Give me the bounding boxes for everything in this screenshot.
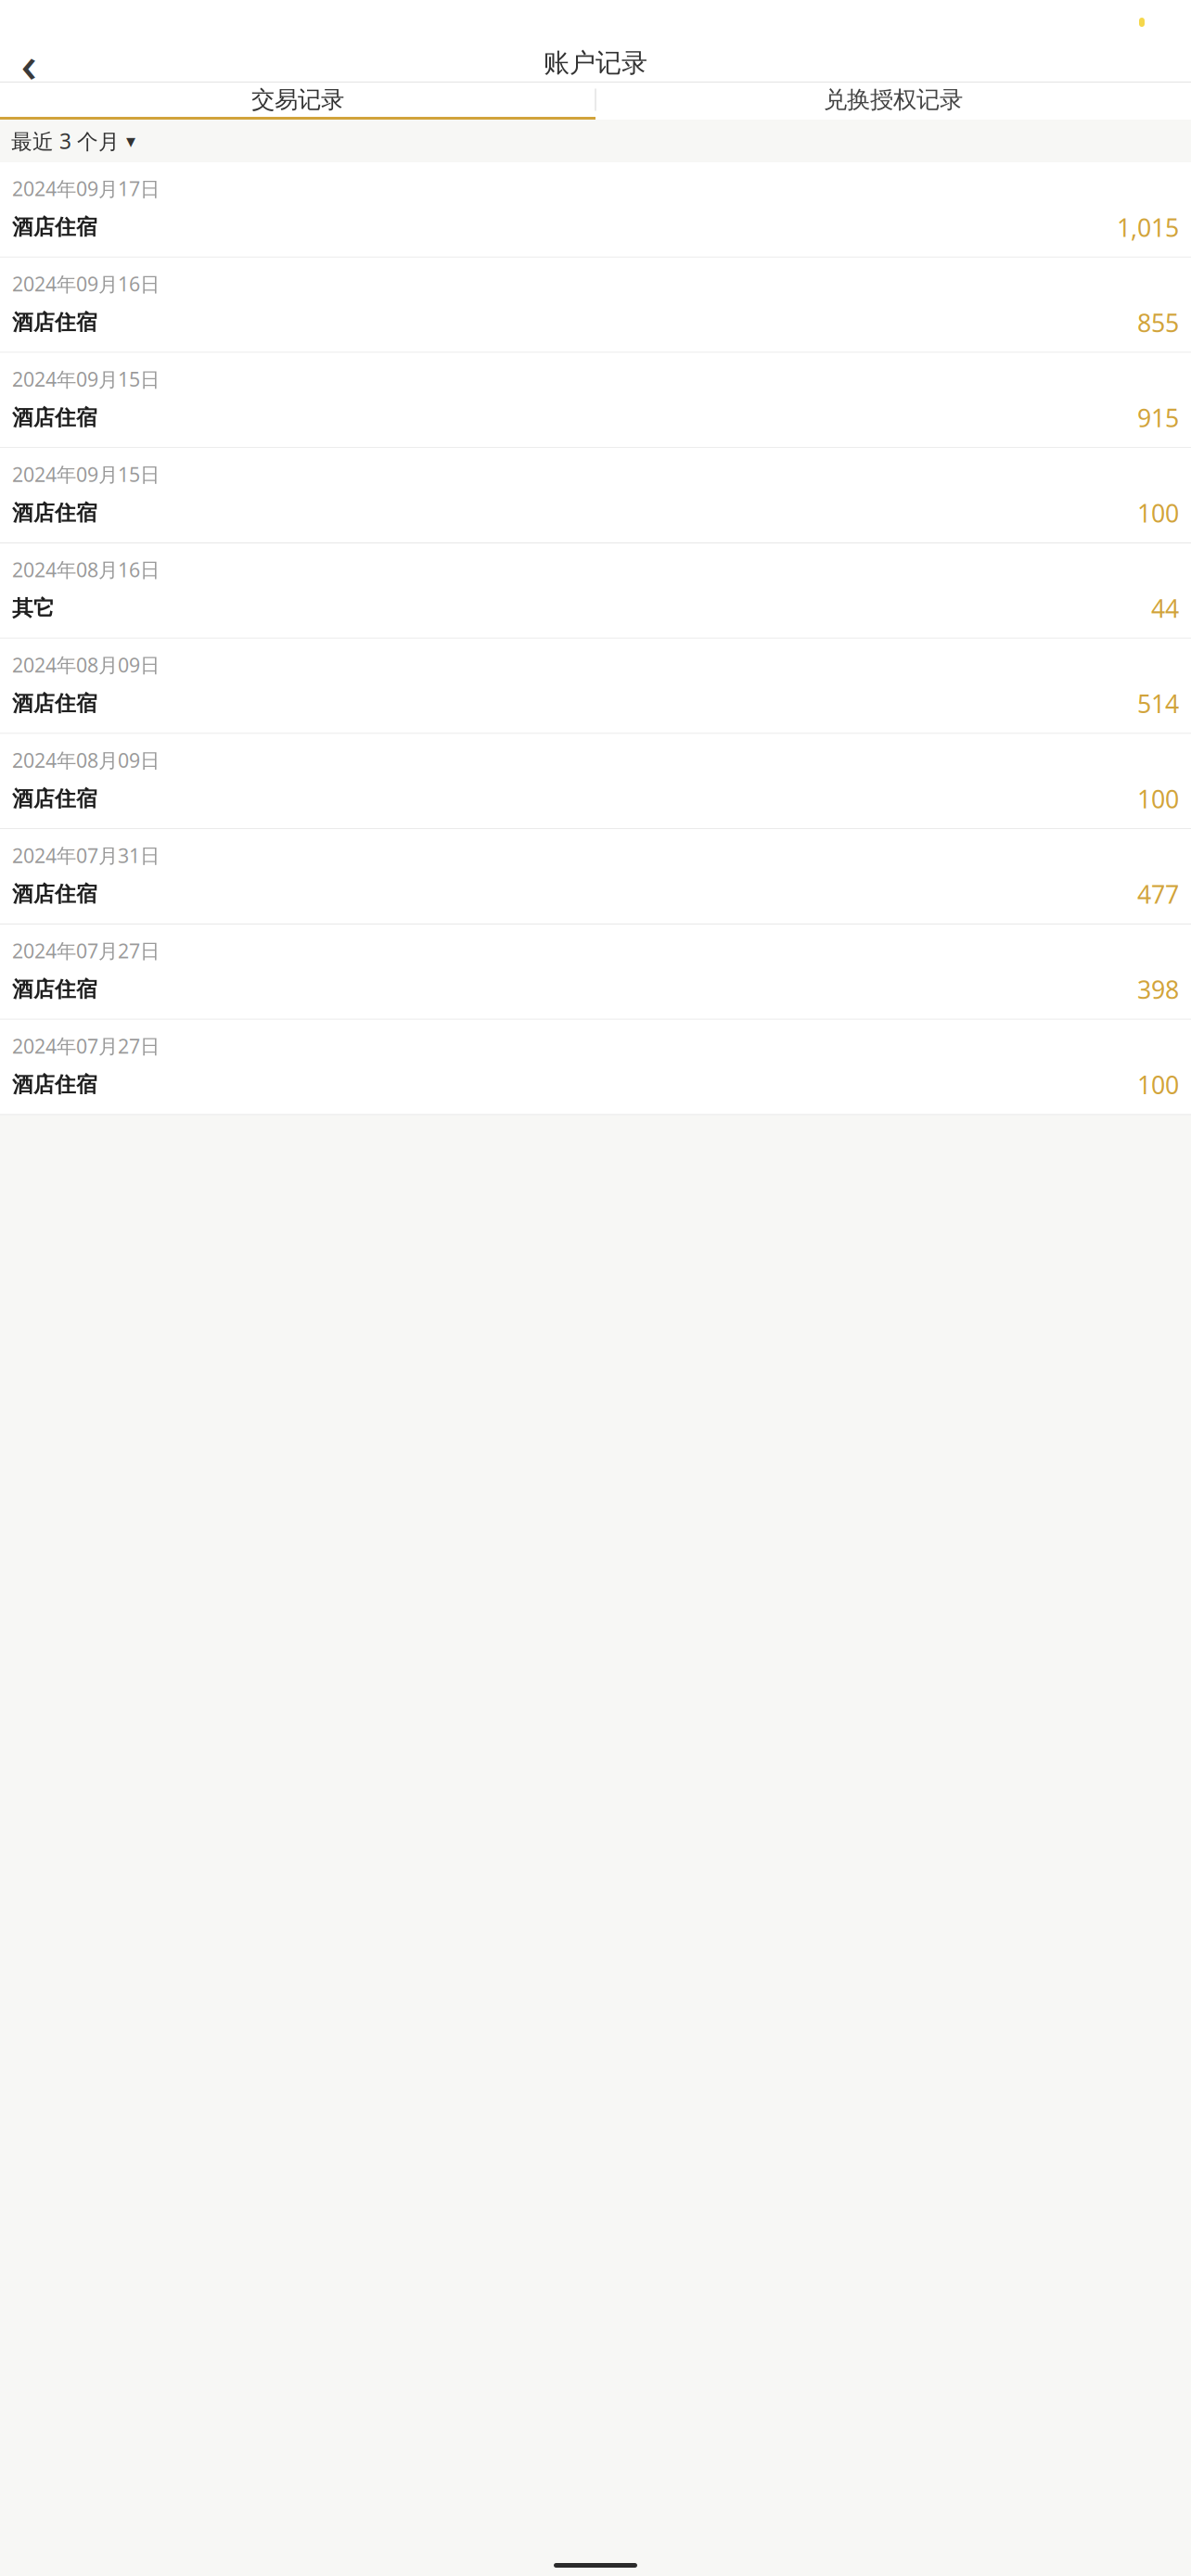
staticText: 2024年08月09日: [12, 652, 160, 678]
staticText: 酒店住宿: [12, 405, 97, 431]
staticText: ‹: [21, 30, 37, 96]
staticText: 交易记录: [251, 85, 344, 114]
staticText: 其它: [12, 595, 55, 621]
staticText: 100: [1137, 1068, 1179, 1101]
button[interactable]: 2024年07月31日: [0, 829, 1191, 924]
staticText: 酒店住宿: [12, 1072, 97, 1098]
staticText: 2024年07月27日: [12, 1033, 160, 1059]
staticText: 514: [1137, 687, 1179, 720]
button[interactable]: 最近 3 个月: [0, 120, 1191, 162]
staticText: 兑换授权记录: [824, 85, 963, 114]
staticText: 100: [1137, 497, 1179, 529]
staticText: 2024年09月17日: [12, 175, 160, 201]
staticText: 酒店住宿: [12, 214, 97, 240]
staticText: ▾: [126, 130, 135, 152]
staticText: 2024年09月15日: [12, 366, 160, 392]
staticText: 酒店住宿: [12, 310, 97, 335]
button[interactable]: 返回: [4, 44, 54, 83]
staticText: 2024年08月16日: [12, 556, 160, 583]
button[interactable]: 2024年08月09日: [0, 734, 1191, 829]
button[interactable]: 2024年09月16日: [0, 258, 1191, 353]
button[interactable]: 2024年09月17日: [0, 162, 1191, 258]
staticText: 酒店住宿: [12, 500, 97, 526]
staticText: 2024年08月09日: [12, 747, 160, 773]
button[interactable]: 兑换授权记录: [595, 83, 1191, 117]
staticText: 44: [1151, 592, 1179, 625]
button[interactable]: 2024年08月16日: [0, 543, 1191, 639]
staticText: 账户记录: [544, 47, 647, 79]
button[interactable]: 2024年07月27日: [0, 924, 1191, 1020]
staticText: 酒店住宿: [12, 977, 97, 1002]
staticText: 398: [1137, 973, 1179, 1006]
staticText: 2024年09月15日: [12, 461, 160, 487]
button[interactable]: 交易记录: [0, 83, 595, 117]
staticText: 最近 3 个月: [11, 127, 120, 155]
staticText: 酒店住宿: [12, 881, 97, 907]
staticText: 915: [1137, 401, 1179, 434]
staticText: 2024年09月16日: [12, 270, 160, 297]
staticText: 2024年07月27日: [12, 937, 160, 964]
staticText: 酒店住宿: [12, 691, 97, 716]
staticText: 2024年07月31日: [12, 842, 160, 868]
button[interactable]: 2024年09月15日: [0, 448, 1191, 543]
staticText: 酒店住宿: [12, 786, 97, 812]
button[interactable]: 2024年09月15日: [0, 353, 1191, 448]
staticText: 1,015: [1117, 211, 1179, 244]
staticText: 855: [1137, 306, 1179, 339]
button[interactable]: 2024年08月09日: [0, 639, 1191, 734]
staticText: 477: [1137, 878, 1179, 911]
staticText: 100: [1137, 782, 1179, 815]
button[interactable]: 2024年07月27日: [0, 1020, 1191, 1115]
